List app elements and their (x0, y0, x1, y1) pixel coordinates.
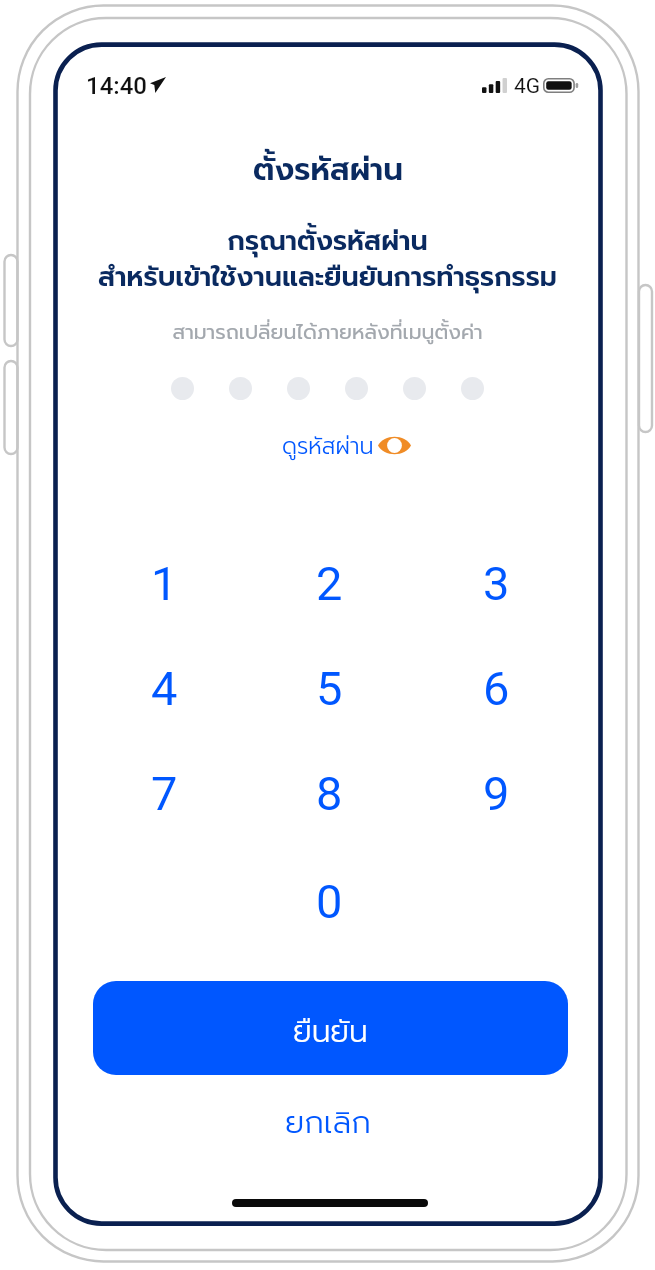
staticText: 2 (316, 556, 343, 611)
staticText: สามารถเปลี่ยนได้ภายหลังที่เมนูตั้งค่า (172, 317, 483, 348)
staticText: ดูรหัสผ่าน (282, 429, 374, 463)
staticText: 14:40 (86, 72, 147, 100)
staticText: 0 (316, 874, 343, 929)
button[interactable]: 6 (442, 652, 550, 724)
button[interactable]: 7 (110, 757, 218, 829)
staticText: 4 (151, 661, 178, 716)
other: Location active (150, 77, 166, 93)
button[interactable]: ยืนยัน (93, 981, 568, 1075)
button[interactable]: ดูรหัสผ่าน (272, 427, 420, 469)
staticText: 8 (316, 766, 343, 821)
button[interactable]: 9 (442, 757, 550, 829)
staticText: ยืนยัน (293, 1009, 368, 1054)
button[interactable]: 3 (442, 547, 550, 619)
staticText: 1 (151, 556, 178, 611)
button[interactable]: 8 (275, 757, 383, 829)
staticText: 7 (151, 766, 178, 821)
staticText: 6 (483, 661, 510, 716)
other: Show password (378, 437, 411, 454)
button[interactable]: 4 (110, 652, 218, 724)
staticText: กรุณาตั้งรหัสผ่าน (227, 221, 428, 262)
staticText: ตั้งรหัสผ่าน (253, 146, 403, 193)
staticText: ยกเลิก (285, 1099, 371, 1146)
staticText: สำหรับเข้าใช้งานและยืนยันการทำธุรกรรม (98, 257, 557, 298)
button[interactable]: 5 (275, 652, 383, 724)
button[interactable]: 1 (110, 547, 218, 619)
staticText: 9 (483, 766, 510, 821)
button[interactable]: 0 (275, 865, 383, 937)
button[interactable]: 2 (275, 547, 383, 619)
button[interactable]: ยกเลิก (267, 1092, 389, 1153)
staticText: 4G (514, 74, 541, 99)
staticText: 5 (316, 661, 343, 716)
staticText: 3 (483, 556, 510, 611)
